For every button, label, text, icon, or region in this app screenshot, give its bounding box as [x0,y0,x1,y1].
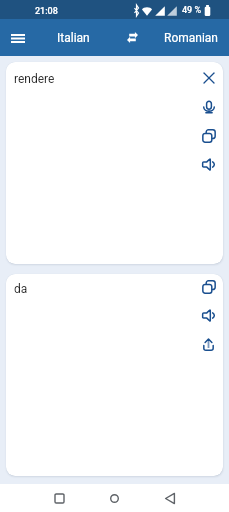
staticText: 21:08 [35,6,58,17]
button[interactable]: Home [87,484,142,512]
button[interactable]: Italian [36,19,110,56]
button[interactable]: Listen [194,150,223,179]
button[interactable]: Copy [194,274,223,301]
staticText: 49 % [182,5,202,16]
button[interactable]: Swap languages [115,19,150,56]
button[interactable]: Clear text [194,63,223,92]
staticText: Romanian [164,31,218,45]
staticText: da [14,282,28,296]
button[interactable]: Voice input [194,92,223,121]
button[interactable]: Listen [194,301,223,330]
button[interactable]: Back [142,484,197,512]
button[interactable]: Menu [0,20,36,56]
button[interactable]: Share [194,330,223,359]
button[interactable]: Copy [194,121,223,150]
staticText: Italian [57,31,90,45]
button[interactable]: Recents [32,484,87,512]
staticText: rendere [14,72,55,86]
button[interactable]: Romanian [152,19,229,56]
